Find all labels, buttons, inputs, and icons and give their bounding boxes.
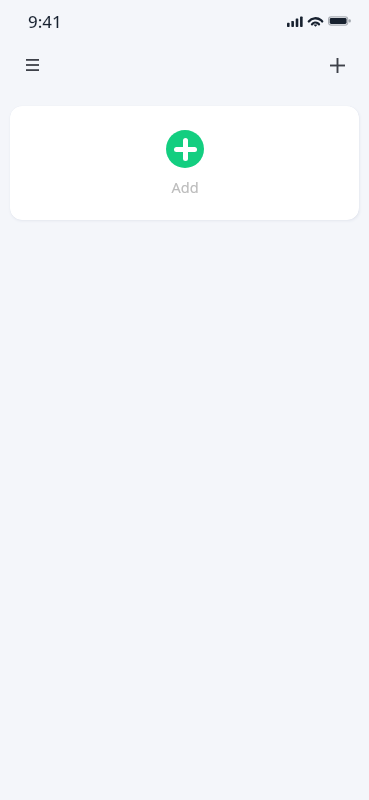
button[interactable]: Add [317, 45, 357, 85]
button[interactable]: Add [10, 106, 359, 220]
staticText: 9:41 [28, 10, 62, 33]
button[interactable]: Menu [12, 45, 52, 85]
staticText: Add [171, 177, 199, 197]
